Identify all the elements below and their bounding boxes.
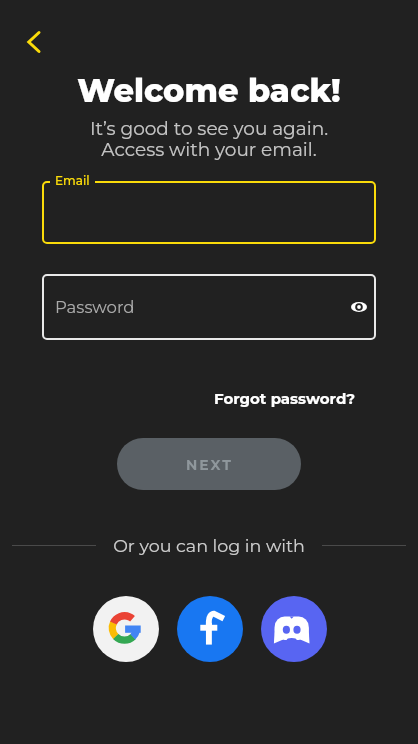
staticText: Forgot password? bbox=[214, 389, 356, 407]
button[interactable]: Forgot password? bbox=[214, 389, 356, 407]
button[interactable] bbox=[261, 596, 327, 662]
button[interactable] bbox=[342, 290, 376, 324]
staticText: Or you can log in with bbox=[0, 535, 418, 556]
staticText: It’s good to see you again. Access with … bbox=[0, 117, 418, 161]
staticText: Email bbox=[55, 173, 90, 188]
staticText: NEXT bbox=[186, 456, 233, 473]
button[interactable]: Password bbox=[42, 274, 376, 340]
button[interactable]: NEXT bbox=[117, 438, 301, 490]
staticText: Password bbox=[55, 297, 135, 317]
button[interactable] bbox=[12, 20, 56, 64]
button[interactable] bbox=[93, 596, 159, 662]
button[interactable] bbox=[42, 181, 376, 244]
button[interactable] bbox=[177, 596, 243, 662]
staticText: Welcome back! bbox=[0, 71, 418, 110]
